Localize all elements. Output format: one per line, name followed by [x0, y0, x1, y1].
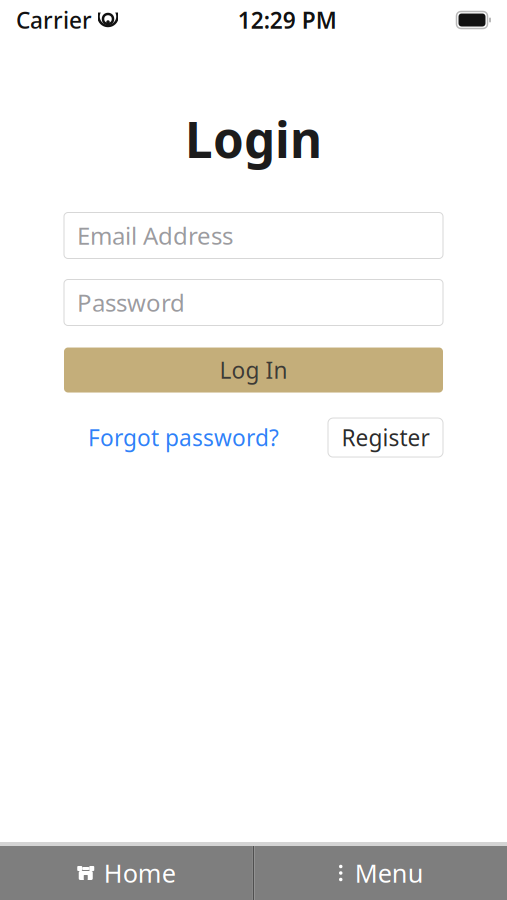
staticText: Register — [341, 422, 429, 453]
button[interactable]: Home — [0, 846, 252, 900]
staticText: Login — [185, 106, 322, 171]
staticText: Carrier — [16, 5, 92, 35]
staticText: Password — [77, 287, 185, 318]
staticText: Menu — [355, 856, 424, 890]
staticText: Forgot password? — [88, 422, 279, 453]
staticText: Email Address — [77, 220, 233, 251]
staticText: 12:29 PM — [238, 5, 337, 35]
staticText: Home — [104, 856, 176, 890]
button[interactable]: Menu — [254, 846, 507, 900]
staticText: Log In — [219, 355, 287, 385]
button[interactable]: Register — [328, 418, 443, 457]
button[interactable]: Forgot password? — [88, 414, 279, 461]
button[interactable]: Log In — [64, 347, 443, 392]
